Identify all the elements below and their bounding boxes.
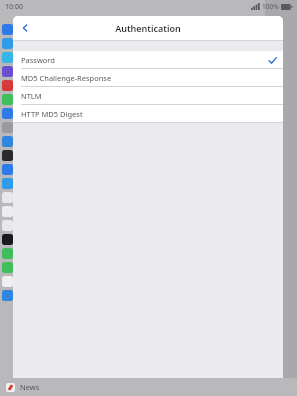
staticText: MD5 Challenge-Response <box>21 73 112 83</box>
staticText: HTTP MD5 Digest <box>21 109 83 119</box>
button[interactable]: News <box>6 378 297 396</box>
button[interactable]: Password <box>13 51 283 68</box>
staticText: NTLM <box>21 91 42 101</box>
staticText: 10:00 <box>5 2 23 12</box>
button[interactable]: NTLM <box>13 86 283 104</box>
staticText: Password <box>21 55 55 65</box>
staticText: News <box>20 382 40 392</box>
button[interactable]: HTTP MD5 Digest <box>13 104 283 123</box>
staticText: 100% <box>262 2 279 11</box>
staticText: Authentication <box>115 22 181 34</box>
button[interactable]: Back <box>13 16 37 40</box>
button[interactable]: MD5 Challenge-Response <box>13 68 283 86</box>
